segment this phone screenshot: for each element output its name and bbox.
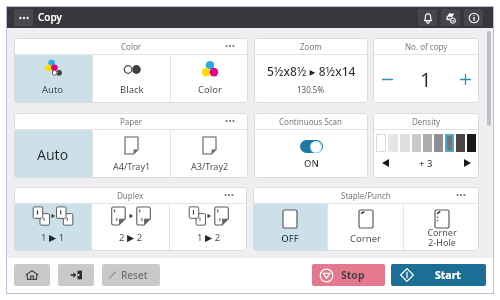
staticText: Start — [435, 268, 461, 282]
staticText: OFF — [281, 232, 299, 245]
button[interactable]: Notifications — [418, 9, 437, 26]
button[interactable]: OFF — [253, 204, 327, 251]
button[interactable]: Increase copies — [451, 55, 479, 103]
staticText: Auto — [42, 83, 64, 96]
staticText: + 3 — [419, 157, 433, 170]
button[interactable]: A3/Tray2 — [171, 130, 248, 178]
staticText: Auto — [37, 145, 69, 164]
button[interactable]: Corner — [328, 204, 403, 251]
button[interactable]: ON — [254, 130, 368, 178]
button[interactable]: Device status — [441, 9, 460, 26]
button[interactable]: Log out — [58, 264, 94, 286]
staticText: Corner 2-Hole — [427, 226, 457, 248]
staticText: Staple/Punch — [341, 190, 391, 201]
button[interactable]: Black — [93, 55, 170, 103]
staticText: 2 ▶ 2 — [119, 231, 143, 244]
button[interactable]: 5½x8½ ▸ 8½x14 — [254, 55, 368, 103]
button[interactable]: More options — [223, 114, 237, 128]
staticText: A4/Tray1 — [113, 160, 151, 172]
button[interactable]: Corner 2-Hole — [404, 204, 479, 251]
button[interactable]: Start — [391, 264, 486, 286]
staticText: Paper — [120, 116, 143, 127]
button[interactable]: Menu — [14, 9, 33, 26]
button[interactable]: Auto — [14, 130, 92, 178]
button[interactable]: Decrease copies — [373, 55, 401, 103]
button[interactable]: Home — [14, 264, 50, 286]
button[interactable]: 1 ▶ 1 — [14, 204, 91, 251]
button[interactable]: 1 ▶ 2 — [170, 204, 247, 251]
staticText: 5½x8½ ▸ 8½x14 — [267, 63, 356, 79]
button[interactable]: 2 ▶ 2 — [92, 204, 169, 251]
staticText: Stop — [341, 268, 365, 282]
staticText: A3/Tray2 — [191, 160, 229, 172]
button[interactable]: More options — [223, 39, 237, 53]
button[interactable]: Color — [171, 55, 248, 103]
staticText: Reset — [121, 268, 148, 282]
button[interactable]: Reset — [102, 264, 160, 286]
button[interactable]: Density level 1 — [376, 134, 386, 152]
staticText: No. of copy — [405, 41, 448, 52]
button[interactable]: Darker — [458, 155, 476, 171]
button[interactable]: Lighter — [376, 155, 394, 171]
staticText: 1 — [420, 66, 432, 93]
staticText: Corner — [350, 232, 381, 245]
staticText: 1 ▶ 2 — [197, 231, 221, 244]
button[interactable]: A4/Tray1 — [93, 130, 170, 178]
staticText: Copy — [38, 10, 62, 24]
staticText: Black — [120, 83, 144, 96]
button[interactable]: Auto — [14, 55, 92, 103]
staticText: 130.5% — [297, 84, 325, 95]
button[interactable]: Stop — [312, 264, 385, 286]
button[interactable]: Information — [464, 9, 483, 26]
staticText: 1 ▶ 1 — [41, 231, 65, 244]
staticText: Continuous Scan — [279, 116, 343, 127]
staticText: Zoom — [300, 41, 322, 52]
staticText: Color — [198, 83, 222, 96]
button[interactable]: More options — [454, 188, 468, 202]
staticText: Duplex — [117, 190, 144, 201]
staticText: Color — [121, 41, 142, 52]
staticText: Density — [412, 116, 441, 127]
button[interactable]: More options — [222, 188, 236, 202]
staticText: ON — [304, 157, 319, 170]
